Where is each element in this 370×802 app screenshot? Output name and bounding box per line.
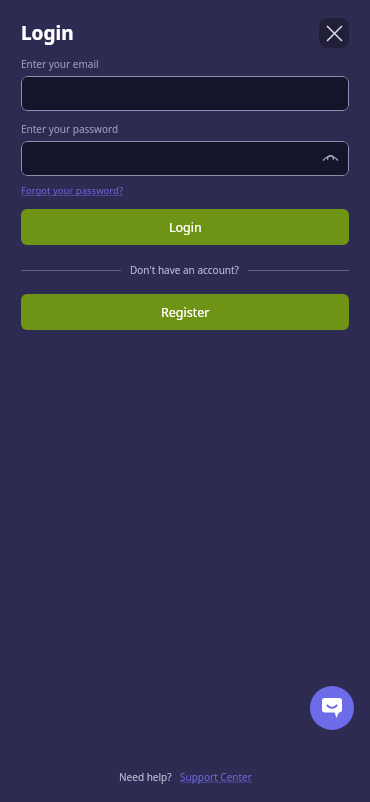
button[interactable]: Forgot your password? — [21, 184, 124, 197]
staticText: Register — [161, 304, 210, 321]
button[interactable]: Show password — [21, 141, 349, 176]
staticText: Enter your password — [21, 122, 119, 136]
button[interactable]: Login — [21, 209, 349, 245]
button[interactable]: Show password — [320, 149, 340, 169]
staticText: Login — [169, 219, 202, 236]
staticText: Need help? — [119, 770, 172, 784]
staticText: Don't have an account? — [130, 263, 239, 277]
button[interactable]: Open chat support — [310, 686, 354, 730]
staticText: Forgot your password? — [21, 184, 124, 197]
button[interactable] — [21, 76, 349, 111]
button[interactable]: Register — [21, 294, 349, 330]
button[interactable]: Close — [319, 18, 349, 48]
button[interactable]: Support Center — [180, 770, 252, 784]
staticText: Enter your email — [21, 57, 99, 71]
staticText: Login — [21, 20, 74, 46]
staticText: Support Center — [180, 770, 252, 784]
